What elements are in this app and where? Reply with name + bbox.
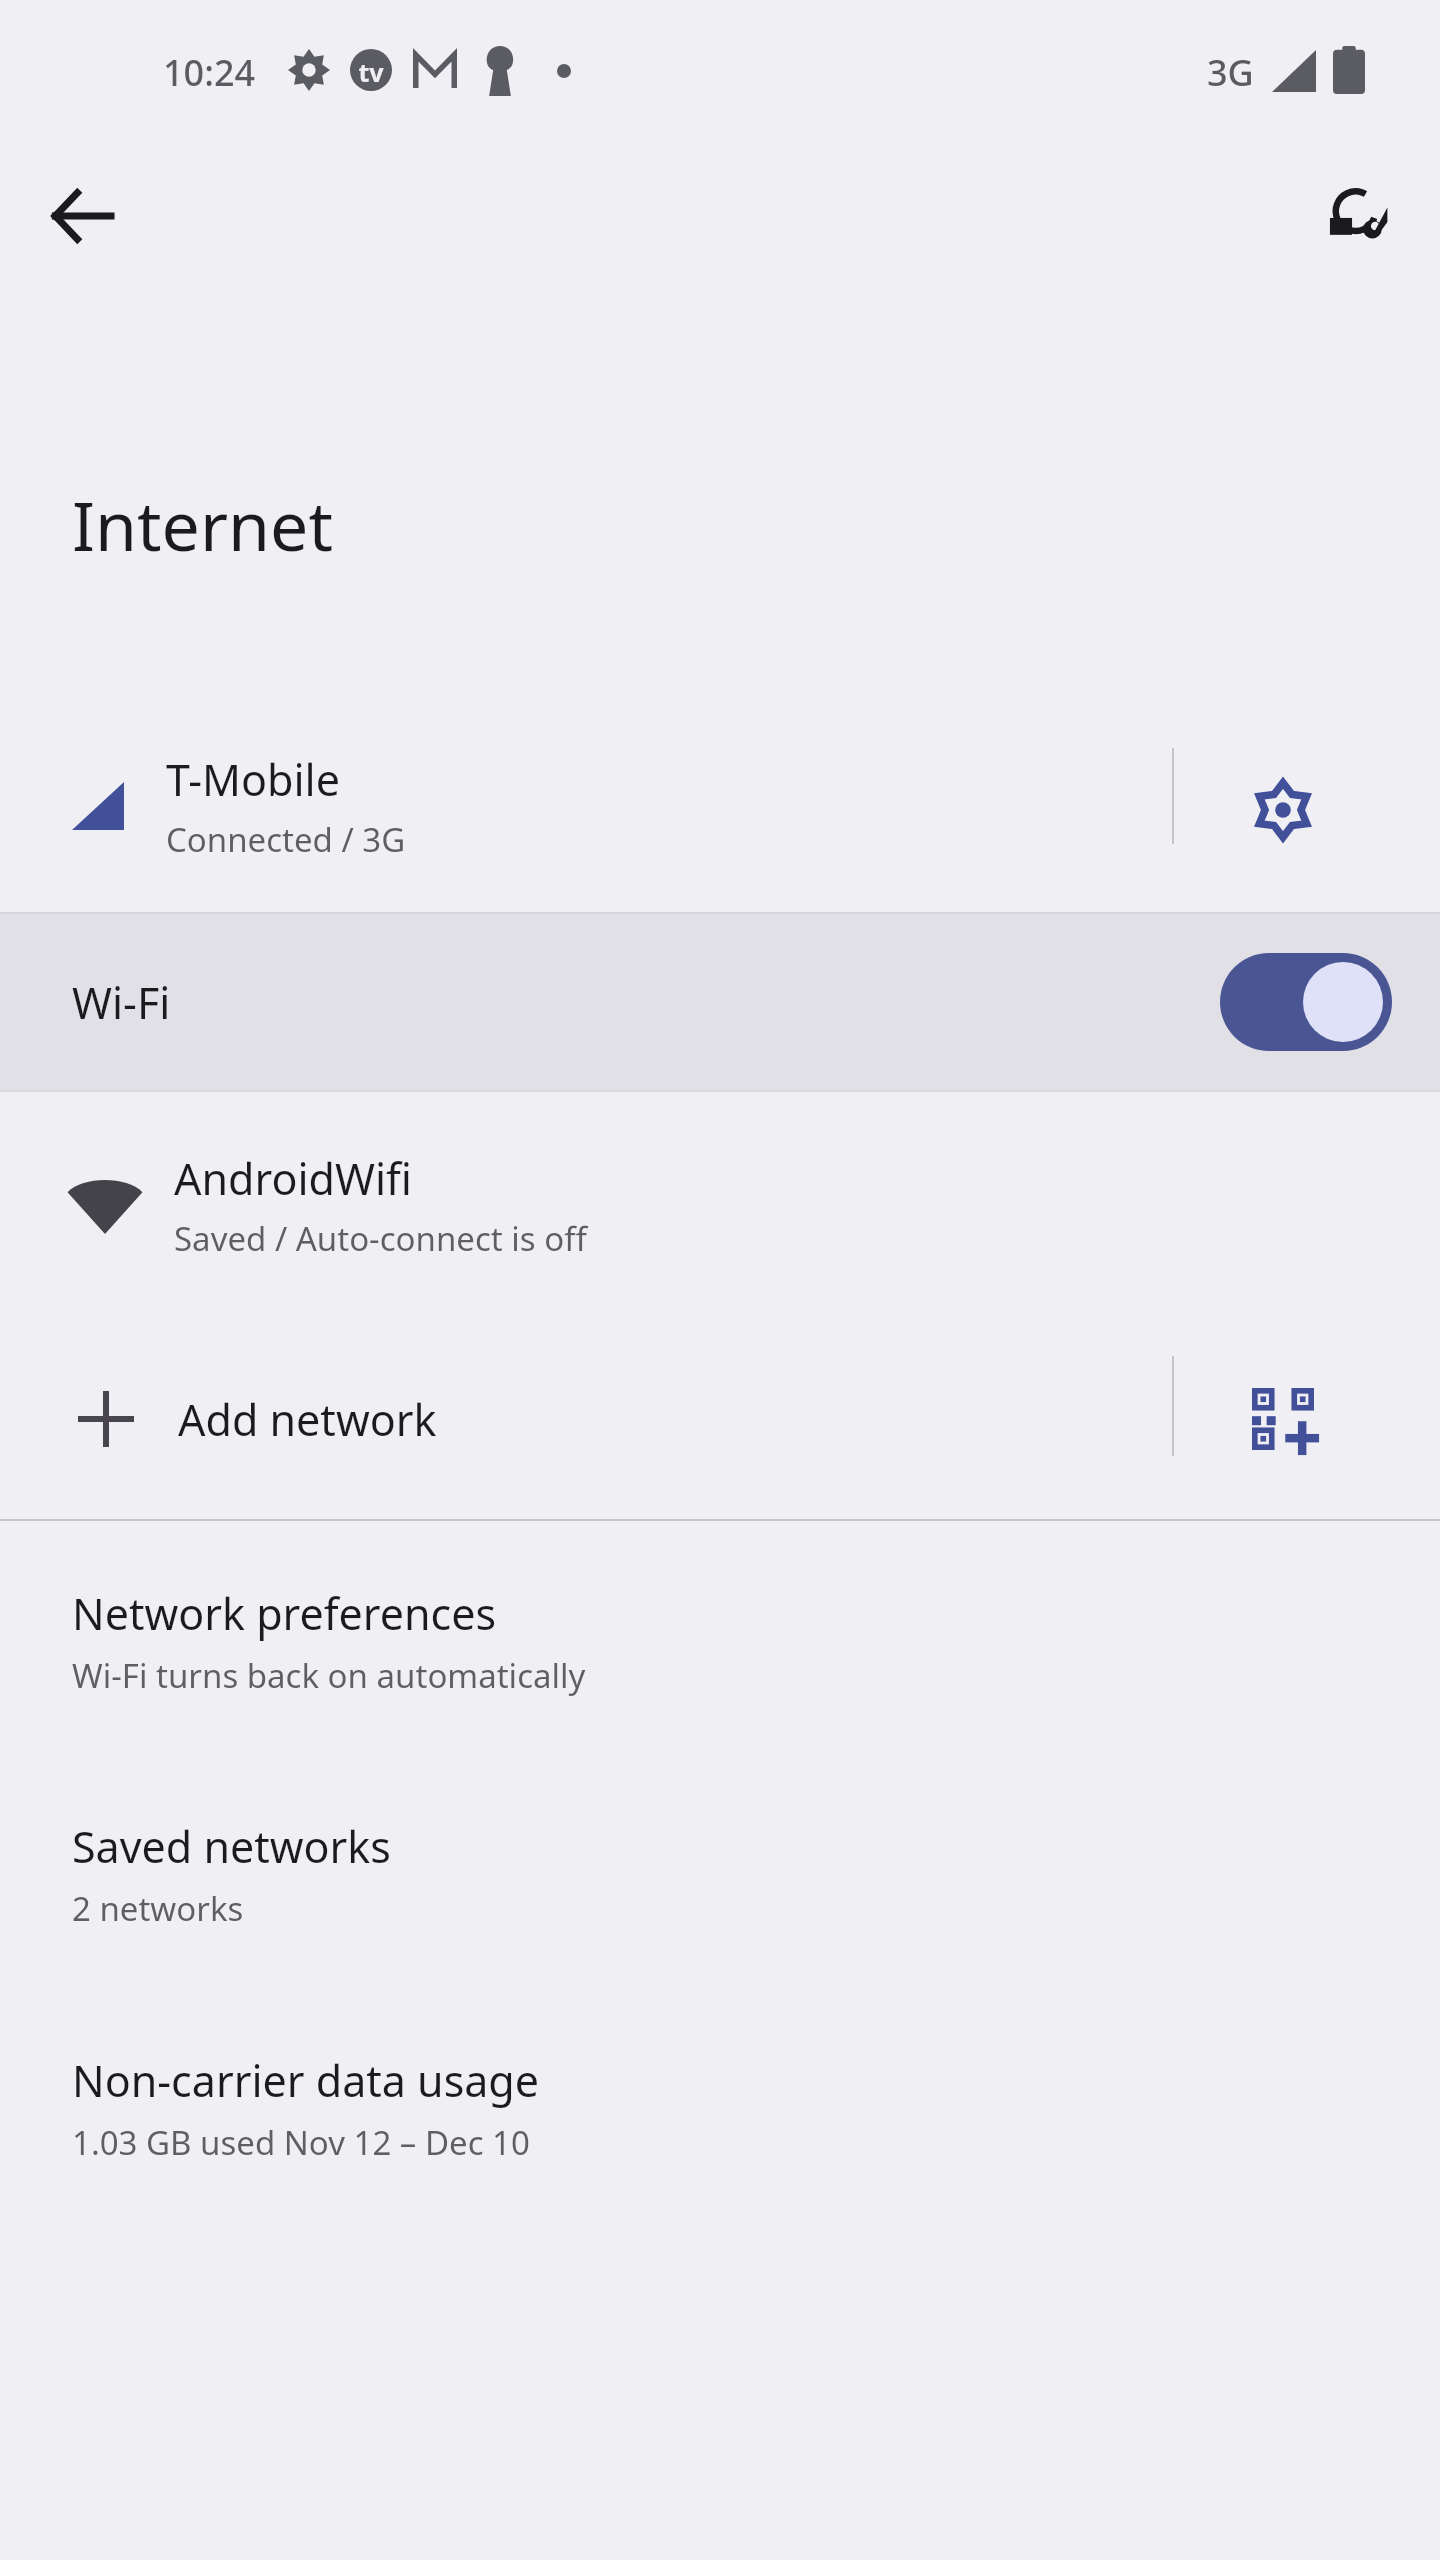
staticText: Wi-Fi xyxy=(72,973,171,1032)
staticText: 2 networks xyxy=(72,1886,244,1931)
staticText: Non-carrier data usage xyxy=(72,2051,540,2110)
button[interactable]: Saved networks xyxy=(0,1803,1440,1993)
staticText: 10:24 xyxy=(163,48,256,97)
staticText: Saved networks xyxy=(72,1817,391,1876)
staticText: Saved / Auto-connect is off xyxy=(174,1216,587,1261)
staticText: Wi-Fi turns back on automatically xyxy=(72,1653,586,1698)
staticText: T-Mobile xyxy=(166,750,340,809)
button[interactable]: Non-carrier data usage xyxy=(0,2037,1440,2227)
button[interactable]: Network preferences xyxy=(0,1570,1440,1760)
button[interactable]: Wi-Fi xyxy=(0,914,1440,1090)
button[interactable]: Scan QR code to add network xyxy=(1221,1357,1345,1481)
button[interactable]: Carrier settings xyxy=(1221,748,1345,872)
staticText: Network preferences xyxy=(72,1584,497,1643)
button[interactable]: Back xyxy=(26,160,138,272)
staticText: tv xyxy=(356,55,386,89)
button[interactable]: AndroidWifi xyxy=(0,1100,1440,1310)
button[interactable]: Wi-Fi on xyxy=(1220,953,1392,1051)
button[interactable]: Reset and troubleshoot xyxy=(1302,160,1414,272)
staticText: Connected / 3G xyxy=(166,817,406,862)
staticText: 1.03 GB used Nov 12 – Dec 10 xyxy=(72,2120,530,2165)
staticText: AndroidWifi xyxy=(174,1149,412,1208)
staticText: Add network xyxy=(178,1390,437,1449)
button[interactable]: T-Mobile xyxy=(0,712,1172,900)
button[interactable]: Add network xyxy=(0,1320,1172,1518)
staticText: Internet xyxy=(72,478,333,571)
staticText: 3G xyxy=(1207,48,1254,97)
